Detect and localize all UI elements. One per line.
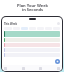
- button[interactable]: Add event: [55, 59, 60, 64]
- button[interactable]: [4, 48, 60, 52]
- button[interactable]: [4, 31, 60, 37]
- staticText: This Week: [4, 22, 18, 26]
- staticText: Plan Your Week in Seconds: [17, 3, 48, 13]
- staticText: Smart scheduling that adapts: [17, 15, 48, 18]
- button[interactable]: [4, 43, 60, 47]
- button[interactable]: [4, 53, 60, 57]
- button[interactable]: Profile: [57, 22, 60, 25]
- button[interactable]: [4, 38, 60, 42]
